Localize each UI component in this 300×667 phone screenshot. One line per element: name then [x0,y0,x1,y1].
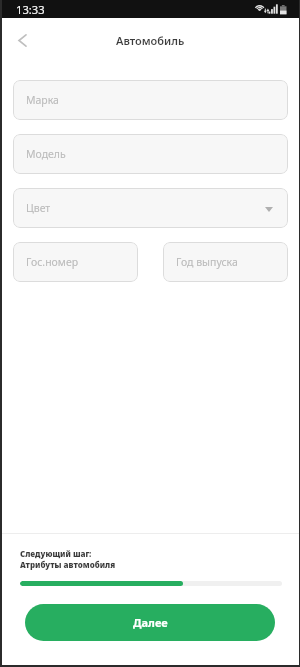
staticText: Гос.номер [26,255,79,269]
staticText: Модель [26,147,66,161]
button[interactable]: Год выпуска [163,242,288,282]
button[interactable]: Модель [13,134,288,174]
staticText: Год выпуска [176,255,238,269]
staticText: Далее [133,615,168,630]
button[interactable]: Гос.номер [13,242,138,282]
button[interactable]: Марка [13,80,288,120]
button[interactable]: Back [2,20,42,60]
staticText: 13:33 [16,2,45,17]
staticText: Атрибуты автомобиля [20,559,116,570]
staticText: Следующий шаг: [20,548,92,559]
button[interactable]: Далее [25,604,275,641]
staticText: Цвет [26,201,51,215]
staticText: Марка [26,93,59,107]
button[interactable]: Цвет [13,188,288,228]
staticText: Автомобиль [116,33,185,48]
